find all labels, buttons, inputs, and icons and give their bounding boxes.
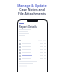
- button[interactable]: Back: [19, 22, 24, 24]
- button[interactable]: [19, 51, 46, 54]
- staticText: File Attachments: [18, 11, 46, 15]
- button[interactable]: [19, 45, 46, 48]
- button[interactable]: [19, 48, 46, 51]
- staticText: Case Notes and: [19, 7, 45, 11]
- button[interactable]: [19, 57, 46, 60]
- button[interactable]: [19, 54, 46, 57]
- staticText: Report Details: [19, 25, 37, 28]
- button[interactable]: [19, 42, 46, 45]
- staticText: Manage & Update: [17, 3, 47, 7]
